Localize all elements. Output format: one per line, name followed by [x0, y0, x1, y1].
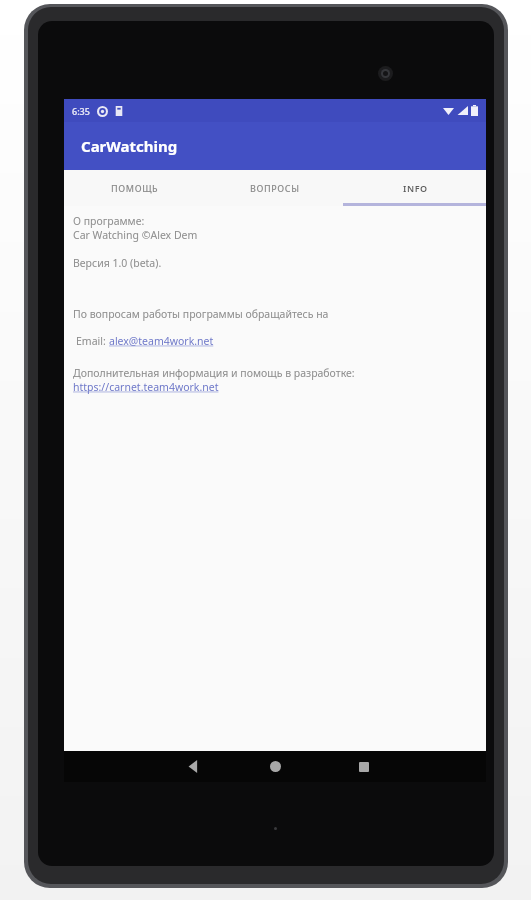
staticText: Дополнительная информация и помощь в раз…	[73, 366, 355, 380]
staticText: alex@team4work.net	[109, 334, 214, 348]
button[interactable]: Back	[164, 751, 222, 782]
button[interactable]: INFO	[345, 170, 486, 206]
staticText: О программе:	[73, 214, 145, 228]
button[interactable]: ВОПРОСЫ	[205, 170, 345, 206]
button[interactable]: Home	[246, 751, 304, 782]
staticText: INFO	[403, 182, 428, 194]
staticText: CarWatching	[81, 136, 178, 156]
staticText: https://carnet.team4work.net	[73, 380, 219, 394]
staticText: 6:35	[72, 105, 90, 117]
button[interactable]: alex@team4work.net	[109, 334, 214, 348]
staticText: ПОМОЩЬ	[111, 182, 159, 194]
button[interactable]: https://carnet.team4work.net	[73, 380, 219, 394]
staticText: Версия 1.0 (beta).	[73, 256, 162, 270]
staticText: По вопросам работы программы обращайтесь…	[73, 307, 329, 321]
button[interactable]: ПОМОЩЬ	[64, 170, 205, 206]
button[interactable]: Recent apps	[335, 751, 393, 782]
staticText: Email:	[76, 334, 109, 348]
staticText: ВОПРОСЫ	[250, 182, 300, 194]
staticText: Car Watching ©Alex Dem	[73, 228, 198, 242]
